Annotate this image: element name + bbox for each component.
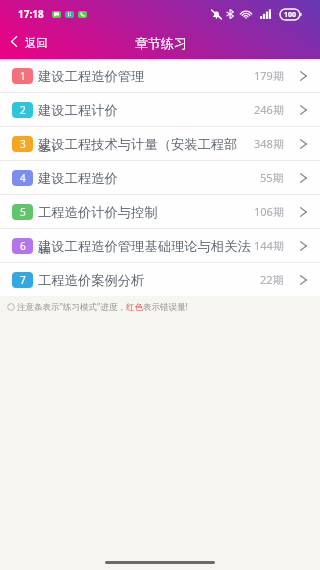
button[interactable]: 返回: [6, 24, 53, 59]
staticText: 7: [20, 273, 26, 287]
staticText: 179期: [254, 68, 284, 83]
staticText: 4: [20, 171, 26, 185]
staticText: 章节练习: [135, 35, 187, 51]
staticText: 2: [20, 103, 26, 117]
staticText: 注意条表示"练习模式"进度，: [17, 301, 126, 313]
button[interactable]: 5: [0, 195, 320, 228]
staticText: 工程造价计价与控制: [38, 204, 158, 220]
staticText: 红色: [126, 302, 143, 313]
staticText: 返回: [25, 36, 48, 50]
staticText: 17:18: [18, 7, 44, 21]
staticText: 22期: [260, 272, 284, 287]
staticText: 6: [20, 239, 26, 253]
staticText: 建设工程造价: [38, 170, 118, 186]
staticText: 表示错误量!: [143, 301, 188, 313]
staticText: 100: [284, 10, 297, 20]
staticText: 55期: [260, 170, 284, 185]
staticText: 348期: [254, 136, 284, 151]
staticText: 144期: [254, 238, 284, 253]
button[interactable]: 2: [0, 93, 320, 126]
staticText: 建设工程技术与计量（安装工程部务): [38, 136, 254, 152]
staticText: 建设工程造价管理基础理论与相关法规: [38, 238, 254, 254]
staticText: 建设工程造价管理: [38, 68, 145, 84]
staticText: 1: [20, 69, 26, 83]
button[interactable]: 4: [0, 161, 320, 194]
staticText: 工程造价案例分析: [38, 272, 145, 288]
staticText: 3: [20, 137, 26, 151]
staticText: 5: [20, 205, 26, 219]
staticText: 建设工程计价: [38, 102, 118, 118]
staticText: 106期: [254, 204, 284, 219]
staticText: 246期: [254, 102, 284, 117]
button[interactable]: 6: [0, 229, 320, 262]
button[interactable]: 7: [0, 263, 320, 296]
button[interactable]: 3: [0, 127, 320, 160]
button[interactable]: 1: [0, 59, 320, 92]
